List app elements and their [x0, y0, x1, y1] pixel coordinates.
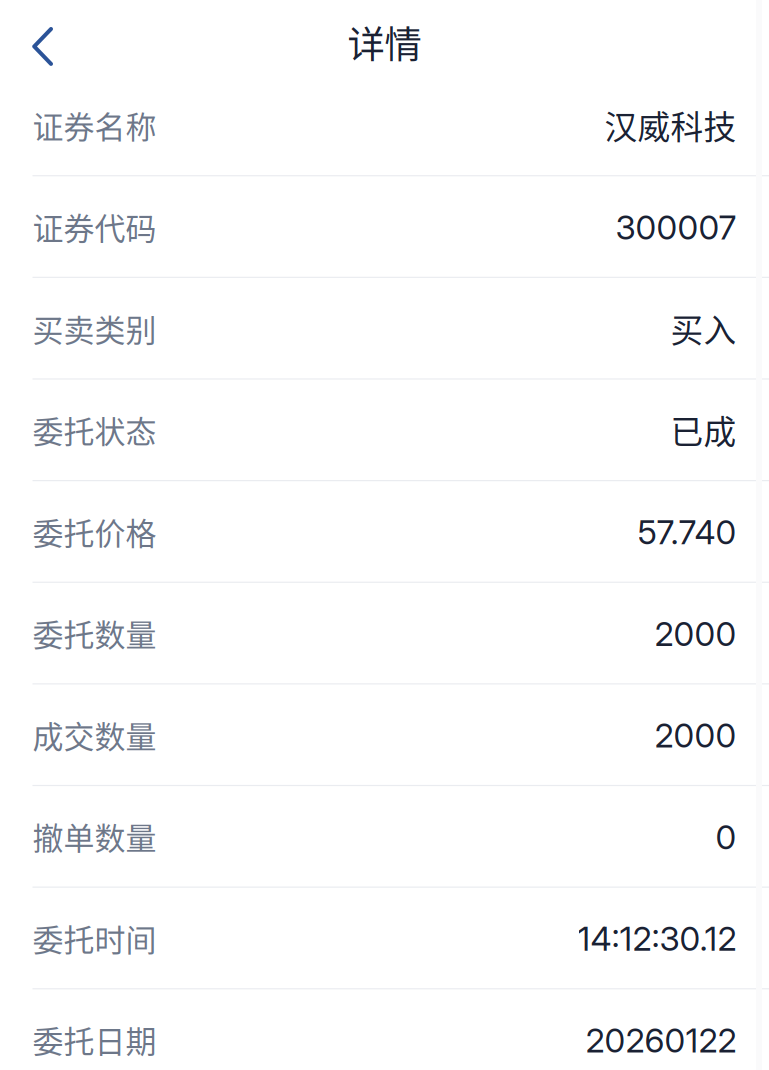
button[interactable]: 委托价格 [0, 481, 769, 583]
button[interactable]: 成交数量 [0, 684, 769, 786]
staticText: 撤单数量 [32, 814, 156, 859]
staticText: 详情 [347, 15, 421, 69]
button[interactable]: 证券代码 [0, 176, 769, 278]
staticText: 买入 [670, 304, 736, 352]
button[interactable]: 证券名称 [0, 75, 769, 176]
staticText: 57.740 [637, 512, 736, 552]
staticText: 委托状态 [32, 407, 156, 452]
staticText: 20260122 [585, 1020, 736, 1060]
staticText: 0 [715, 817, 736, 857]
staticText: 委托价格 [32, 509, 156, 554]
button[interactable]: Back [0, 0, 74, 74]
button[interactable]: 委托状态 [0, 380, 769, 481]
staticText: 已成 [670, 406, 736, 453]
staticText: 14:12:30.12 [577, 918, 736, 959]
staticText: 委托日期 [32, 1017, 156, 1062]
staticText: 成交数量 [32, 712, 156, 757]
staticText: 委托数量 [32, 611, 156, 655]
staticText: 300007 [615, 207, 736, 247]
staticText: 委托时间 [32, 916, 156, 960]
staticText: 证券名称 [32, 102, 156, 147]
staticText: 买卖类别 [32, 306, 156, 351]
button[interactable]: 委托日期 [0, 989, 769, 1070]
button[interactable]: 撤单数量 [0, 786, 769, 888]
button[interactable]: 买卖类别 [0, 278, 769, 380]
staticText: 2000 [654, 715, 736, 756]
staticText: 2000 [654, 614, 736, 654]
staticText: 证券代码 [32, 204, 156, 249]
button[interactable]: 委托时间 [0, 888, 769, 989]
button[interactable]: 委托数量 [0, 583, 769, 684]
staticText: 汉威科技 [604, 101, 736, 149]
